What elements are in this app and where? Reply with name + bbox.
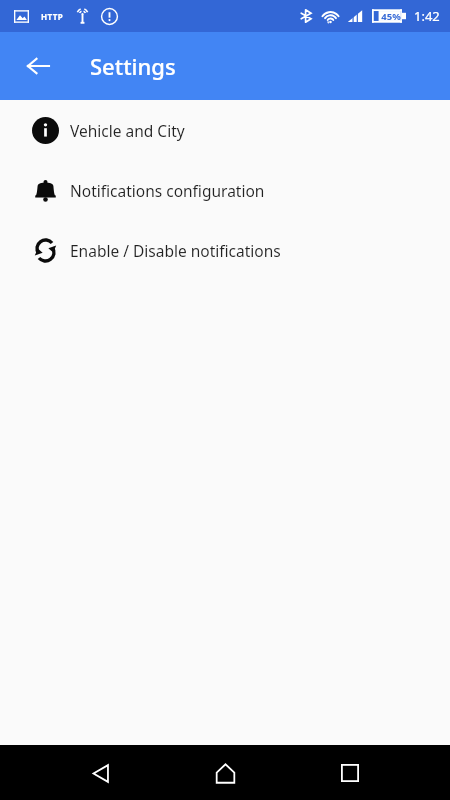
staticText: Vehicle and City (70, 120, 185, 141)
button[interactable]: Enable / Disable notifications (0, 220, 450, 280)
staticText: 1:42 (414, 7, 440, 25)
button[interactable]: Back (14, 42, 62, 90)
button[interactable]: Vehicle and City (0, 100, 450, 160)
staticText: Enable / Disable notifications (70, 240, 281, 261)
button[interactable]: Notifications configuration (0, 160, 450, 220)
button[interactable]: Home (201, 749, 249, 797)
staticText: Settings (90, 51, 176, 81)
staticText: 45% (381, 10, 401, 23)
staticText: HTTP (41, 11, 64, 22)
staticText: Notifications configuration (70, 180, 265, 201)
button[interactable]: Recent apps (326, 749, 374, 797)
button[interactable]: Back (77, 749, 125, 797)
